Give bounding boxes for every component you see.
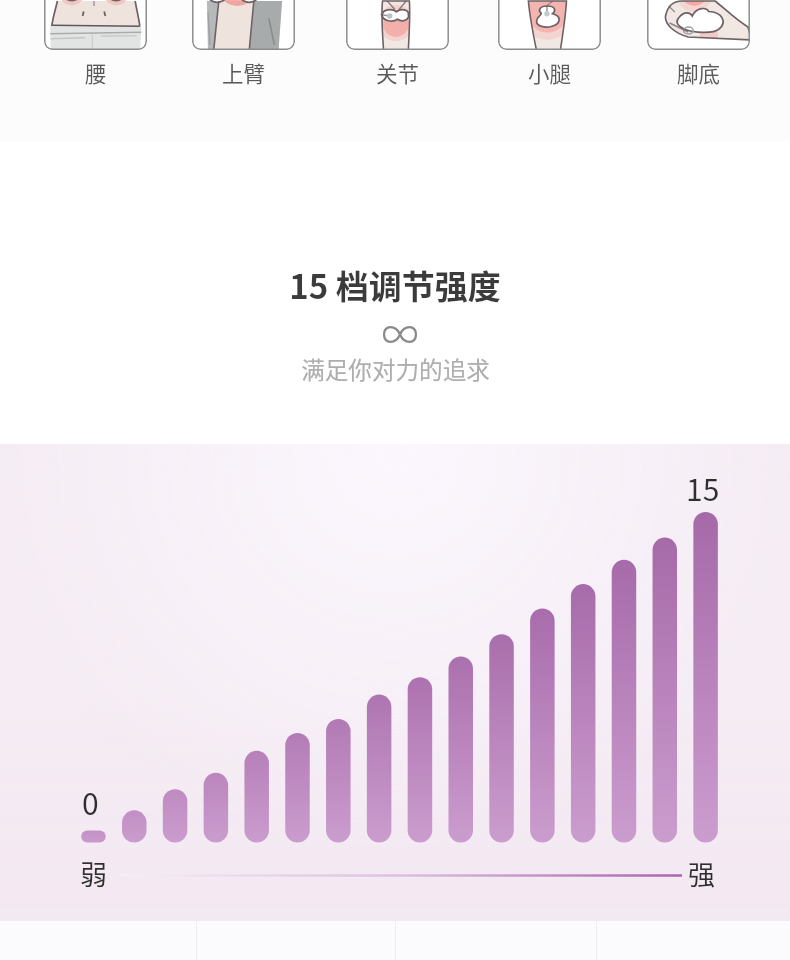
staticText: 脚底	[677, 57, 721, 88]
staticText: 15 档调节强度	[289, 261, 501, 309]
staticText: 满足你对力的追求	[301, 352, 490, 386]
staticText: 上臂	[222, 57, 266, 88]
staticText: 小腿	[528, 57, 572, 88]
staticText: 15	[686, 466, 720, 509]
staticText: 腰	[85, 57, 107, 88]
button[interactable]: 小腿	[498, 0, 601, 50]
button[interactable]: 脚底	[647, 0, 750, 50]
staticText: 0	[82, 780, 99, 823]
staticText: 弱	[80, 854, 107, 893]
staticText: 强	[688, 854, 715, 893]
button[interactable]: 关节	[346, 0, 449, 50]
button[interactable]: 腰	[44, 0, 147, 50]
button[interactable]: 上臂	[192, 0, 295, 50]
staticText: 关节	[376, 57, 420, 88]
